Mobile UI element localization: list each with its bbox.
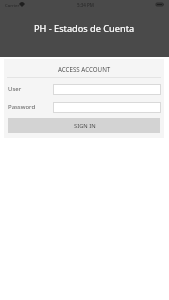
button[interactable]: SIGN IN (8, 118, 160, 133)
other: Wi-Fi signal (19, 2, 25, 7)
button[interactable]: User (53, 84, 161, 95)
staticText: ACCESS ACCOUNT (58, 65, 111, 73)
staticText: User (8, 85, 22, 93)
staticText: PH - Estados de Cuenta (34, 22, 135, 35)
staticText: Carrier (5, 2, 20, 8)
staticText: Password (8, 103, 36, 111)
staticText: SIGN IN (74, 122, 96, 130)
staticText: 5:34 PM (77, 2, 94, 8)
other: Battery (156, 3, 164, 6)
button[interactable]: Password (53, 102, 161, 113)
